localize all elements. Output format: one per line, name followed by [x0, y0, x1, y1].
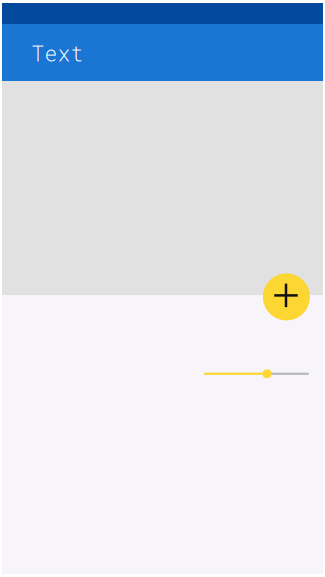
button[interactable]: Brush size — [204, 369, 309, 378]
staticText: Text — [31, 39, 83, 67]
button[interactable]: Add — [263, 273, 310, 320]
